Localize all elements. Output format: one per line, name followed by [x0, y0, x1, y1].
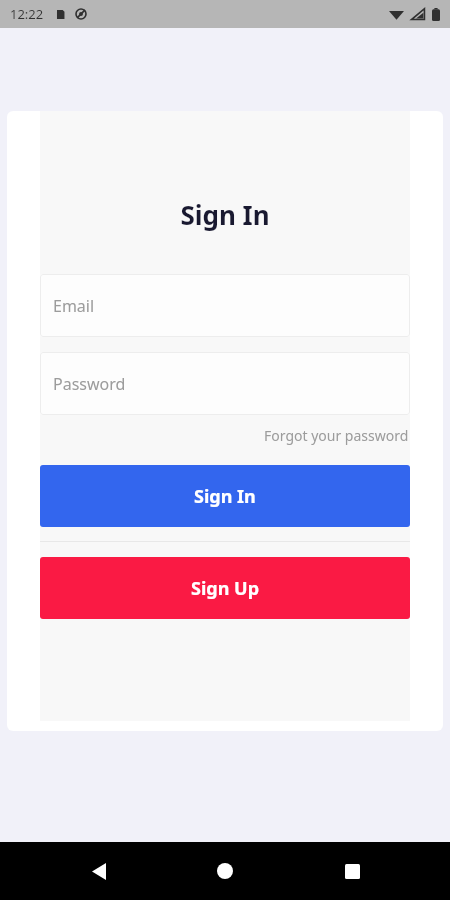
button[interactable]: Password: [40, 352, 410, 415]
staticText: 12:22: [10, 5, 44, 23]
staticText: Sign Up: [191, 576, 260, 601]
button[interactable]: Recent apps: [324, 843, 380, 899]
staticText: Forgot your password: [264, 426, 409, 445]
button[interactable]: Home: [197, 843, 253, 899]
staticText: Sign In: [40, 197, 410, 232]
button[interactable]: Back: [71, 843, 127, 899]
staticText: Sign In: [194, 484, 256, 509]
button[interactable]: Forgot your password: [263, 424, 410, 447]
button[interactable]: Sign Up: [40, 557, 410, 619]
button[interactable]: Email: [40, 274, 410, 337]
staticText: Password: [53, 373, 126, 395]
staticText: Email: [53, 295, 95, 317]
button[interactable]: Sign In: [40, 465, 410, 527]
